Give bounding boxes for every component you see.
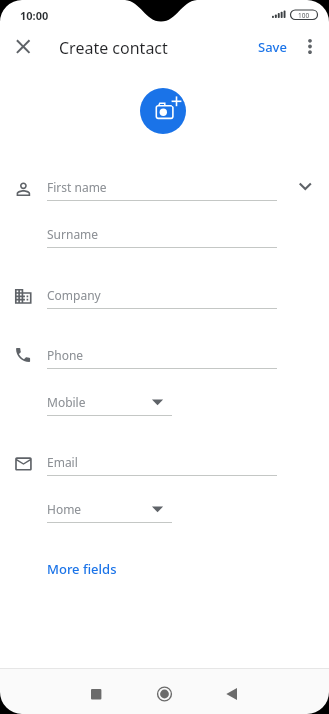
staticText: Mobile [47,394,86,410]
staticText: Email [47,454,78,470]
button[interactable]: Save [250,33,294,61]
button[interactable] [140,88,186,134]
staticText: 100 [298,11,310,20]
button[interactable] [8,339,288,371]
button[interactable] [8,279,288,311]
button[interactable] [298,32,324,62]
staticText: First name [47,179,107,195]
button[interactable] [40,387,178,418]
staticText: More fields [47,560,117,578]
button[interactable] [40,218,288,250]
button[interactable] [292,172,320,200]
button[interactable] [76,674,116,714]
button[interactable]: More fields [40,556,110,582]
staticText: Phone [47,347,84,363]
button[interactable] [8,446,288,478]
button[interactable] [40,494,178,525]
staticText: Surname [47,226,99,242]
staticText: Company [47,287,101,303]
button[interactable] [8,170,288,204]
button[interactable] [212,674,252,714]
staticText: Create contact [59,37,168,57]
staticText: 10:00 [20,8,49,22]
button[interactable] [144,674,184,714]
staticText: Save [258,38,287,56]
button[interactable] [8,32,38,62]
staticText: Home [47,501,82,517]
